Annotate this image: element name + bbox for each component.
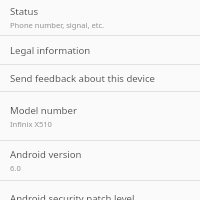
staticText: 6.0 xyxy=(10,163,21,173)
staticText: Status xyxy=(10,5,39,18)
button[interactable]: Model number xyxy=(0,92,200,140)
staticText: Android security patch level xyxy=(10,192,135,200)
button[interactable]: Android security patch level xyxy=(0,181,200,200)
button[interactable]: Android version xyxy=(0,141,200,180)
staticText: Infinix X510 xyxy=(10,119,52,129)
staticText: Android version xyxy=(10,148,82,161)
button[interactable]: Legal information xyxy=(0,36,200,64)
button[interactable]: Status xyxy=(0,0,200,35)
staticText: Send feedback about this device xyxy=(10,72,155,85)
button[interactable]: Send feedback about this device xyxy=(0,65,200,91)
staticText: Legal information xyxy=(10,44,91,57)
staticText: Model number xyxy=(10,104,77,117)
staticText: Phone number, signal, etc. xyxy=(10,20,105,30)
